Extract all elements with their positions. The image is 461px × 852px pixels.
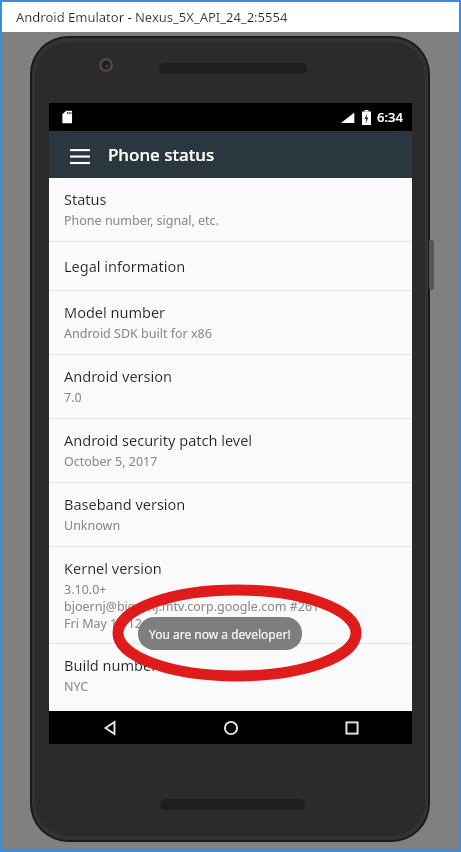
button[interactable]: Recent apps bbox=[291, 711, 412, 744]
button[interactable]: Back bbox=[49, 711, 170, 744]
staticText: 6:34 bbox=[377, 108, 403, 126]
staticText: Fri May 19 12:50:09 PDT 2017 bbox=[64, 615, 236, 632]
staticText: Phone status bbox=[108, 143, 215, 166]
staticText: Model number bbox=[64, 302, 166, 322]
button[interactable]: Status bbox=[49, 178, 412, 241]
button[interactable]: Android security patch level bbox=[49, 419, 412, 482]
staticText: October 5, 2017 bbox=[64, 453, 158, 470]
staticText: Android SDK built for x86 bbox=[64, 325, 212, 342]
button[interactable]: Build number bbox=[49, 644, 412, 707]
staticText: Android security patch level bbox=[64, 430, 253, 450]
button[interactable]: Baseband version bbox=[49, 483, 412, 546]
staticText: 3.10.0+ bbox=[64, 581, 107, 598]
button[interactable]: Home bbox=[170, 711, 291, 744]
staticText: Android Emulator - Nexus_5X_API_24_2:555… bbox=[16, 8, 288, 26]
staticText: bjoernj@bjoernj.mtv.corp.google.com #261 bbox=[64, 598, 320, 615]
staticText: Legal information bbox=[64, 256, 186, 276]
staticText: 7.0 bbox=[64, 389, 82, 406]
button[interactable]: Kernel version bbox=[49, 547, 412, 643]
staticText: You are now a developer! bbox=[149, 626, 291, 642]
staticText: Build number bbox=[64, 655, 158, 675]
button[interactable]: Open navigation menu bbox=[59, 134, 101, 176]
staticText: NYC bbox=[64, 678, 89, 695]
staticText: Android version bbox=[64, 366, 172, 386]
button[interactable]: Legal information bbox=[49, 242, 412, 290]
staticText: Status bbox=[64, 189, 107, 209]
button[interactable]: Model number bbox=[49, 291, 412, 354]
staticText: Kernel version bbox=[64, 558, 162, 578]
button[interactable]: Android version bbox=[49, 355, 412, 418]
staticText: Phone number, signal, etc. bbox=[64, 212, 219, 229]
staticText: Baseband version bbox=[64, 494, 186, 514]
staticText: Unknown bbox=[64, 517, 121, 534]
